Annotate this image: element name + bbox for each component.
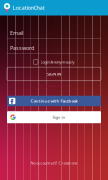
- button[interactable]: No account yet? Create one: [0, 160, 108, 165]
- staticText: Login Anonymously: [41, 59, 75, 65]
- staticText: Email: [10, 29, 23, 37]
- staticText: Continue with Facebook: [30, 98, 77, 104]
- button[interactable]: Login Anonymously: [33, 58, 75, 65]
- button[interactable]: Sign in: [7, 111, 101, 123]
- staticText: Password: [10, 44, 34, 52]
- staticText: Sign in: [52, 115, 65, 120]
- button[interactable]: Continue with Facebook: [7, 96, 101, 106]
- staticText: LocationChat: [12, 4, 44, 11]
- staticText: Forgot password?: [38, 83, 69, 88]
- button[interactable]: SIGN IN: [7, 67, 101, 81]
- staticText: SIGN IN: [47, 71, 61, 77]
- staticText: No account yet? Create one: [30, 160, 77, 165]
- button[interactable]: Forgot password?: [38, 82, 69, 89]
